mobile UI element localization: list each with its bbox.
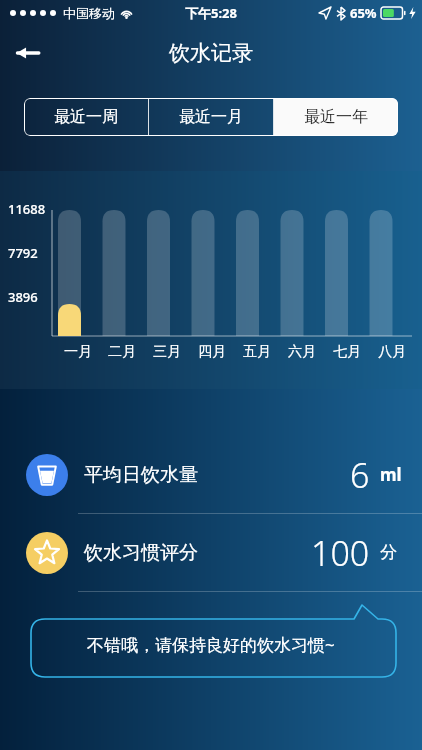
- staticText: 中国移动: [63, 5, 115, 21]
- staticText: 7792: [8, 244, 38, 262]
- button[interactable]: 最近一周: [24, 98, 148, 136]
- staticText: 饮水习惯评分: [84, 541, 198, 565]
- staticText: 3896: [8, 288, 38, 306]
- staticText: 四月: [198, 343, 226, 361]
- button[interactable]: 平均日饮水量: [0, 436, 422, 513]
- staticText: 不错哦，请保持良好的饮水习惯~: [87, 633, 335, 656]
- staticText: 二月: [108, 343, 136, 361]
- staticText: 分: [380, 542, 397, 563]
- staticText: ml: [380, 463, 402, 486]
- staticText: 七月: [333, 343, 361, 361]
- staticText: 最近一月: [179, 107, 243, 127]
- button[interactable]: Back: [8, 33, 48, 73]
- button[interactable]: 饮水习惯评分: [0, 514, 422, 591]
- staticText: 一月: [64, 343, 92, 361]
- staticText: 6: [350, 452, 370, 498]
- staticText: 饮水记录: [169, 40, 253, 66]
- staticText: 五月: [243, 343, 271, 361]
- staticText: 11688: [8, 200, 46, 218]
- staticText: 平均日饮水量: [84, 463, 198, 487]
- staticText: 最近一年: [304, 107, 368, 127]
- staticText: 下午5:28: [185, 4, 237, 22]
- button[interactable]: 最近一年: [274, 98, 398, 136]
- button[interactable]: 最近一月: [149, 98, 273, 136]
- staticText: 100: [311, 530, 370, 576]
- staticText: 八月: [378, 343, 406, 361]
- staticText: 最近一周: [54, 107, 118, 127]
- staticText: 三月: [153, 343, 181, 361]
- staticText: 65%: [350, 4, 377, 22]
- staticText: 六月: [288, 343, 316, 361]
